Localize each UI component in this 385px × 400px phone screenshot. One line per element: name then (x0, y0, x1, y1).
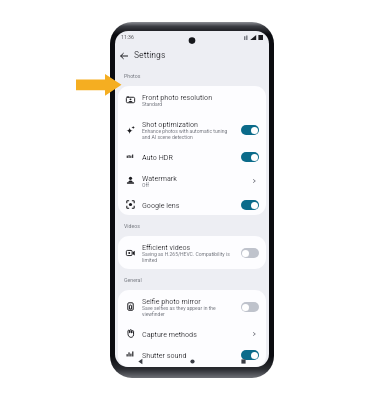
button[interactable]: Efficient videos (118, 236, 266, 269)
staticText: Front photo resolution (142, 93, 213, 101)
button[interactable]: Home (167, 356, 218, 367)
button[interactable]: Open (249, 176, 259, 186)
button[interactable]: Watermark (118, 167, 266, 194)
staticText: Watermark (142, 174, 177, 182)
button[interactable]: Toggle (241, 248, 259, 258)
button[interactable]: Toggle (241, 302, 259, 312)
staticText: Capture methods (142, 330, 197, 338)
staticText: Shutter sound (142, 351, 187, 359)
button[interactable]: Auto HDR (118, 146, 266, 167)
staticText: Saving as H.265/HEVC. Compatibility is l… (142, 251, 230, 263)
staticText: Save selfies as they appear in the viewf… (142, 305, 216, 317)
button[interactable]: Toggle (241, 350, 259, 360)
staticText: Auto HDR (142, 153, 173, 161)
button[interactable]: Open (249, 329, 259, 339)
button[interactable]: Toggle (241, 125, 259, 135)
button[interactable]: Toggle (241, 152, 259, 162)
staticText: Off (142, 182, 149, 188)
staticText: Google lens (142, 201, 180, 209)
button[interactable]: Recent apps (218, 356, 269, 367)
staticText: 11:36 (121, 34, 134, 40)
button[interactable]: Toggle (241, 200, 259, 210)
staticText: Shot optimization (142, 120, 199, 128)
staticText: Efficient videos (142, 243, 191, 251)
button[interactable]: Google lens (118, 194, 266, 215)
button[interactable]: Back (116, 48, 131, 63)
button[interactable]: Capture methods (118, 323, 266, 344)
staticText: Videos (124, 223, 140, 229)
staticText: Settings (134, 50, 166, 60)
button[interactable]: Shot optimization (118, 113, 266, 146)
staticText: General (124, 277, 142, 283)
button[interactable]: Back (115, 356, 167, 367)
staticText: Standard (142, 101, 163, 107)
button[interactable]: Shutter sound (118, 344, 266, 365)
staticText: Selfie photo mirror (142, 297, 201, 305)
staticText: Enhance photos with automatic tuning and… (142, 128, 228, 140)
button[interactable]: Selfie photo mirror (118, 290, 266, 323)
button[interactable]: Front photo resolution (118, 86, 266, 113)
staticText: Photos (124, 73, 141, 79)
